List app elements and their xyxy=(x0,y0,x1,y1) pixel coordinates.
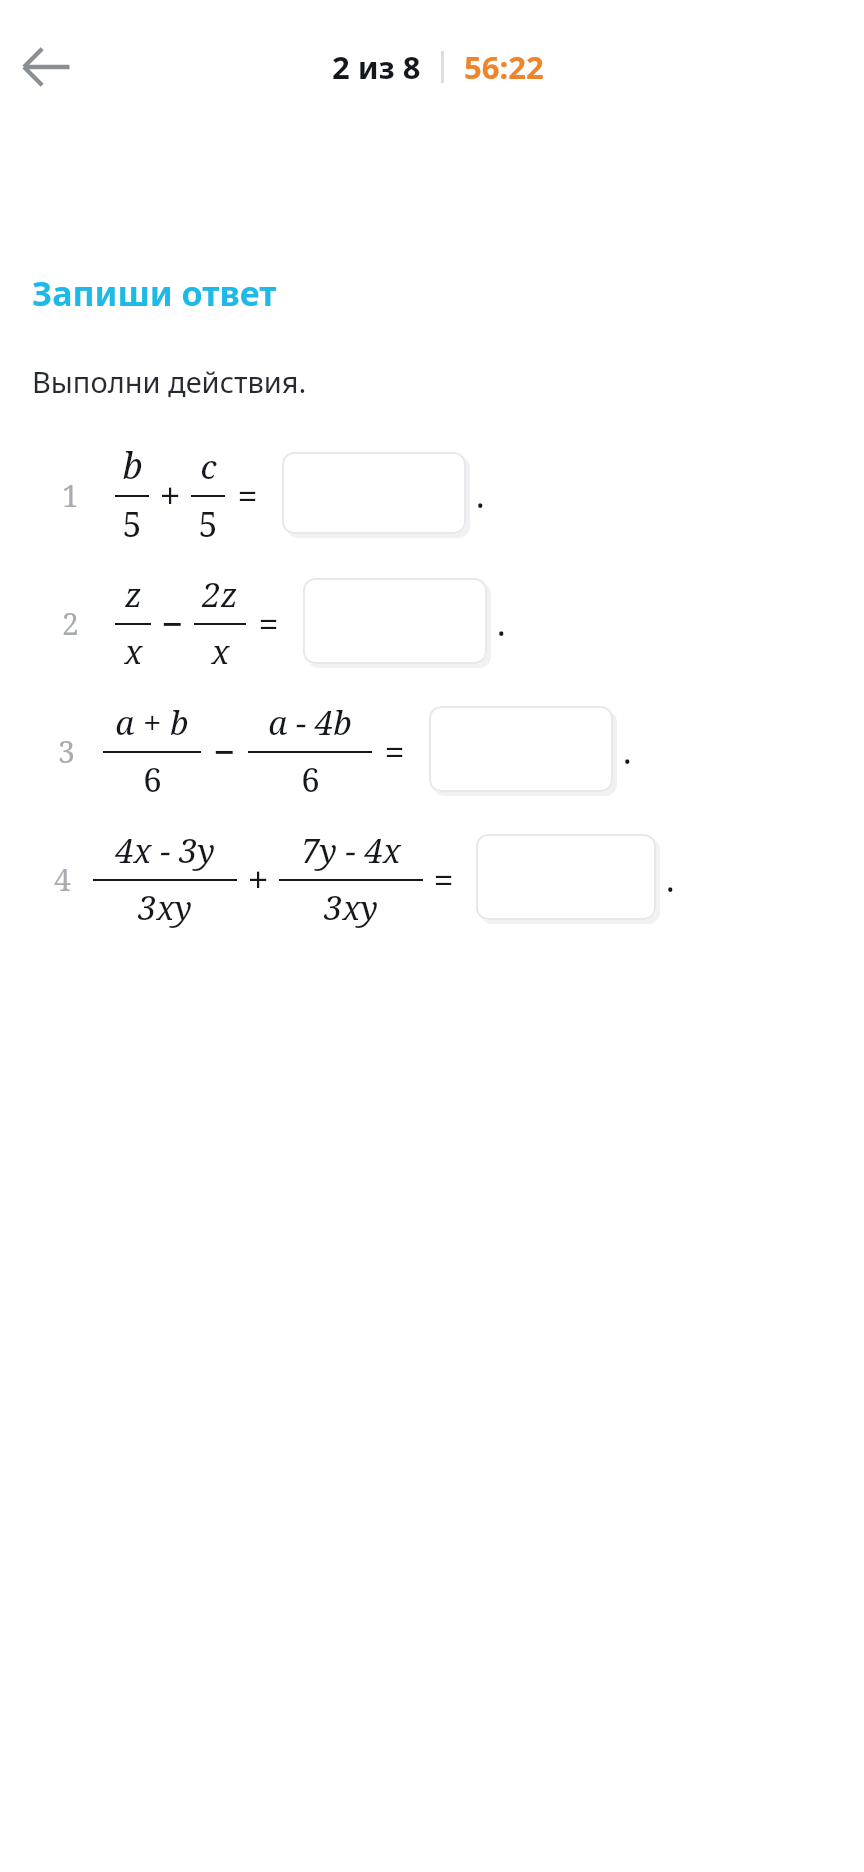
staticText: + xyxy=(159,469,181,521)
staticText: Запиши ответ xyxy=(32,270,277,316)
staticText: . xyxy=(623,728,632,774)
staticText: 2z xyxy=(202,572,238,617)
staticText: − xyxy=(161,597,184,649)
staticText: a − 4b xyxy=(268,700,352,745)
staticText: + xyxy=(247,853,269,905)
staticText: . xyxy=(666,856,675,902)
staticText: b xyxy=(122,441,143,489)
staticText: 7y − 4x xyxy=(301,828,401,873)
button[interactable] xyxy=(429,706,617,796)
staticText: − xyxy=(213,725,236,777)
staticText: . xyxy=(497,600,506,646)
staticText: c xyxy=(200,444,217,489)
staticText: 4x − 3y xyxy=(115,828,215,873)
button[interactable] xyxy=(303,578,491,668)
staticText: 56:22 xyxy=(464,46,544,88)
staticText: Выполни действия. xyxy=(32,362,307,401)
staticText: a + b xyxy=(115,700,189,745)
staticText: 2 из 8 xyxy=(332,46,421,88)
staticText: = xyxy=(384,727,405,776)
button[interactable]: Назад xyxy=(8,29,84,105)
button[interactable] xyxy=(476,834,660,924)
staticText: = xyxy=(258,599,279,648)
staticText: x xyxy=(124,629,143,674)
staticText: 3 xyxy=(58,731,75,772)
staticText: 4 xyxy=(54,859,71,900)
staticText: . xyxy=(476,472,485,518)
staticText: z xyxy=(125,572,142,617)
staticText: = xyxy=(433,855,454,904)
staticText: x xyxy=(211,629,230,674)
staticText: 3xy xyxy=(138,885,192,930)
staticText: 2 xyxy=(62,603,79,644)
staticText: 1 xyxy=(62,475,79,516)
staticText: 6 xyxy=(301,757,320,802)
button[interactable] xyxy=(282,452,470,538)
staticText: 3xy xyxy=(324,885,378,930)
staticText: = xyxy=(237,471,258,520)
staticText: 6 xyxy=(143,757,162,802)
staticText: 5 xyxy=(122,501,142,547)
staticText: 5 xyxy=(198,501,218,547)
